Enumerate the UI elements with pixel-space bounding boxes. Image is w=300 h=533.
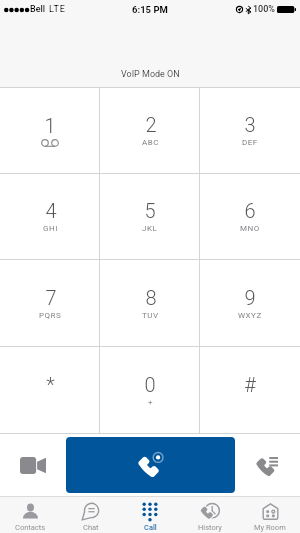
staticText: Contacts xyxy=(15,523,46,532)
staticText: 4 xyxy=(45,199,57,222)
staticText: MNO xyxy=(240,224,260,233)
button[interactable]: 8 xyxy=(100,260,200,346)
staticText: PQRS xyxy=(39,311,62,320)
staticText: + xyxy=(148,398,153,407)
button[interactable]: 6 xyxy=(200,174,300,259)
staticText: # xyxy=(244,373,256,396)
button[interactable]: 1 xyxy=(0,88,100,173)
staticText: 0 xyxy=(144,373,156,396)
staticText: ABC xyxy=(142,138,159,147)
staticText: TUV xyxy=(142,311,159,320)
staticText: 100% xyxy=(253,4,275,15)
staticText: 6:15 PM xyxy=(132,4,168,15)
staticText: 7 xyxy=(45,286,57,309)
staticText: My Room xyxy=(254,523,286,532)
button[interactable]: 0 xyxy=(100,347,200,433)
staticText: VoIP Mode ON xyxy=(121,69,180,80)
staticText: Call xyxy=(144,523,157,532)
button[interactable]: * xyxy=(0,347,100,433)
staticText: 5 xyxy=(144,199,156,222)
button[interactable]: 9 xyxy=(200,260,300,346)
staticText: 6 xyxy=(244,199,256,222)
staticText: 8 xyxy=(145,286,157,309)
button[interactable]: Call options xyxy=(234,434,300,496)
staticText: GHI xyxy=(43,224,58,233)
staticText: LTE xyxy=(49,4,66,15)
button[interactable]: Video call xyxy=(0,434,66,496)
staticText: JKL xyxy=(142,224,158,233)
button[interactable]: 4 xyxy=(0,174,100,259)
button[interactable]: Contacts xyxy=(0,497,60,533)
staticText: History xyxy=(198,523,222,532)
staticText: 9 xyxy=(244,286,256,309)
staticText: 2 xyxy=(145,113,157,136)
staticText: 1 xyxy=(44,114,56,137)
button[interactable]: Call xyxy=(120,497,180,533)
staticText: Bell xyxy=(30,4,46,15)
button[interactable]: 2 xyxy=(100,88,200,173)
button[interactable]: 5 xyxy=(100,174,200,259)
button[interactable]: History xyxy=(180,497,240,533)
button[interactable]: 3 xyxy=(200,88,300,173)
staticText: * xyxy=(46,373,55,396)
button[interactable]: Call xyxy=(66,437,235,493)
staticText: WXYZ xyxy=(238,311,262,320)
button[interactable]: Chat xyxy=(60,497,120,533)
button[interactable]: My Room xyxy=(240,497,300,533)
button[interactable]: # xyxy=(200,347,300,433)
staticText: DEF xyxy=(242,138,258,147)
staticText: Chat xyxy=(83,523,99,532)
staticText: 3 xyxy=(244,113,256,136)
button[interactable]: 7 xyxy=(0,260,100,346)
